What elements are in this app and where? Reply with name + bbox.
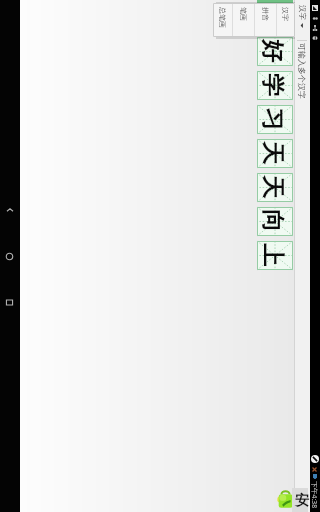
staticText: 汉字 [281,7,290,21]
button[interactable]: 汉字 [295,0,310,40]
staticText: 学 [258,74,287,97]
button[interactable]: 好 [257,37,293,66]
button[interactable]: 天 [257,139,293,168]
button[interactable]: Recents [0,279,20,325]
staticText: 向 [258,210,287,233]
staticText: 天 [258,142,287,165]
button[interactable]: 习 [257,105,293,134]
staticText: 拼音 [261,7,270,21]
button[interactable]: 安 [292,488,308,512]
button[interactable]: 汉字 [277,3,295,37]
staticText: 习 [258,108,287,131]
button[interactable]: Install app [277,490,294,509]
staticText: 安 [295,492,309,510]
button[interactable]: 向 [257,207,293,236]
button[interactable]: 总笔画 [213,3,232,37]
staticText: 总笔画 [218,7,227,28]
staticText: 好 [258,40,287,63]
button[interactable]: 学 [257,71,293,100]
button[interactable]: 笔画 [233,3,254,37]
button[interactable]: 天 [257,173,293,202]
staticText: 上 [258,244,287,267]
button[interactable]: 拼音 [255,3,276,37]
staticText: 下午4:38 [310,481,319,509]
staticText: 天 [258,176,287,199]
button[interactable]: Back [0,187,20,233]
button[interactable]: Home [0,233,20,279]
staticText: 可输入多个汉字 [297,43,307,99]
staticText: 笔画 [239,7,248,21]
button[interactable]: 上 [257,241,293,270]
staticText: 汉字 [298,5,307,20]
